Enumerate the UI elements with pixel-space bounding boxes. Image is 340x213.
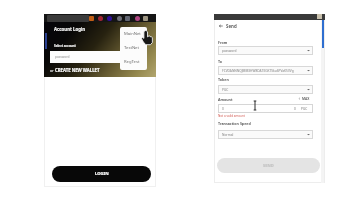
staticText: To bbox=[218, 59, 223, 64]
button[interactable]: Extension bbox=[135, 16, 140, 21]
button[interactable]: 0 bbox=[218, 104, 313, 113]
button[interactable]: TestNet bbox=[120, 41, 147, 55]
button[interactable]: password bbox=[218, 46, 313, 55]
button[interactable]: Extension bbox=[98, 16, 103, 21]
button[interactable]: PGC bbox=[218, 85, 313, 94]
staticText: ↑ bbox=[298, 97, 301, 101]
button[interactable]: Send bbox=[219, 23, 237, 29]
button[interactable]: password bbox=[50, 51, 120, 63]
staticText: 0 bbox=[294, 107, 296, 111]
button[interactable]: Extension bbox=[143, 16, 148, 21]
staticText: Send bbox=[226, 23, 237, 29]
button[interactable]: Extension bbox=[125, 16, 130, 21]
button[interactable]: LOGIN bbox=[52, 166, 151, 182]
button[interactable]: Normal bbox=[218, 130, 313, 139]
staticText: or bbox=[50, 68, 55, 73]
staticText: TestNet bbox=[124, 45, 139, 51]
staticText: Not a valid amount bbox=[218, 114, 245, 118]
staticText: FCVDANNNQJMM3HW8DA7EGK7Sku6PVaK5VVg bbox=[222, 69, 307, 73]
staticText: MainNet bbox=[124, 31, 141, 37]
button[interactable]: RegTest bbox=[120, 55, 147, 69]
staticText: SEND bbox=[263, 163, 274, 168]
staticText: password bbox=[55, 55, 70, 59]
button[interactable]: Extension bbox=[117, 16, 122, 21]
button[interactable]: FCVDANNNQJMM3HW8DA7EGK7Sku6PVaK5VVg bbox=[218, 66, 313, 75]
staticText: PGC bbox=[222, 88, 307, 92]
staticText: From bbox=[218, 40, 228, 45]
staticText: Normal bbox=[222, 133, 307, 137]
button[interactable]: SEND bbox=[217, 158, 320, 173]
staticText: 0 bbox=[222, 107, 224, 111]
staticText: PGC bbox=[301, 107, 308, 111]
button[interactable]: Extension bbox=[107, 16, 112, 21]
staticText: password bbox=[222, 49, 307, 53]
staticText: MAX bbox=[302, 97, 310, 101]
staticText: Select account bbox=[54, 44, 76, 48]
button[interactable]: ↑ bbox=[298, 97, 310, 101]
staticText: Token bbox=[218, 77, 229, 82]
staticText: Account Login bbox=[54, 26, 86, 32]
other: Pointer bbox=[140, 30, 153, 45]
staticText: LOGIN bbox=[95, 171, 109, 177]
button[interactable]: MainNet bbox=[120, 27, 147, 41]
staticText: RegTest bbox=[124, 59, 140, 65]
staticText: Transaction Speed bbox=[218, 121, 251, 126]
button[interactable]: Extension bbox=[89, 16, 94, 21]
button[interactable]: CREATE NEW WALLET bbox=[55, 67, 100, 73]
staticText: Amount bbox=[218, 97, 233, 102]
